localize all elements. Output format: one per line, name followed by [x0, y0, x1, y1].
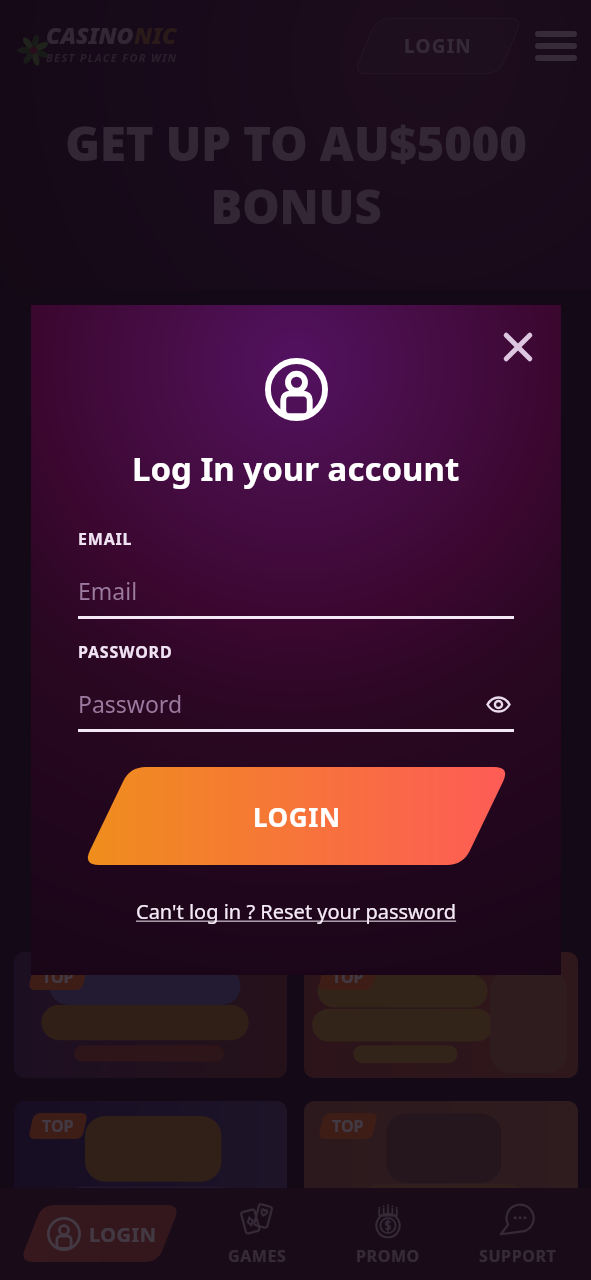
staticText: GAMES: [228, 1245, 287, 1267]
button[interactable]: TOP: [304, 952, 578, 1078]
staticText: PASSWORD: [78, 641, 173, 663]
button[interactable]: Can't log in ? Reset your password: [136, 898, 457, 925]
staticText: Email: [78, 575, 138, 603]
button[interactable]: Close: [492, 321, 544, 373]
button[interactable]: Menu: [535, 25, 577, 67]
button[interactable]: PROMO: [332, 1198, 444, 1278]
staticText: TOP: [332, 1115, 364, 1137]
staticText: TOP: [332, 966, 364, 988]
staticText: BEST PLACE FOR WIN: [46, 50, 178, 65]
button[interactable]: Casinonic home: [18, 19, 48, 65]
staticText: LOGIN: [404, 33, 472, 59]
button[interactable]: TOP: [304, 1101, 578, 1227]
staticText: Password: [78, 688, 183, 716]
button[interactable]: TOP: [14, 1101, 287, 1227]
button[interactable]: LOGIN: [83, 767, 510, 865]
button[interactable]: TOP: [14, 952, 287, 1078]
staticText: TOP: [42, 1115, 74, 1137]
staticText: SUPPORT: [479, 1245, 557, 1267]
staticText: PROMO: [356, 1245, 420, 1267]
button[interactable]: GAMES: [201, 1198, 313, 1278]
button[interactable]: LOGIN: [353, 18, 523, 74]
button[interactable]: Show password: [482, 690, 514, 718]
button[interactable]: SUPPORT: [462, 1198, 574, 1278]
staticText: CASINO: [46, 19, 134, 50]
staticText: GET UP TO AU$5000 BONUS: [65, 111, 527, 237]
staticText: EMAIL: [78, 528, 133, 550]
staticText: LOGIN: [253, 799, 341, 834]
staticText: TOP: [42, 966, 74, 988]
button[interactable]: LOGIN: [20, 1205, 180, 1262]
staticText: NIC: [134, 19, 177, 50]
staticText: LOGIN: [89, 1221, 157, 1248]
staticText: Log In your account: [132, 446, 460, 491]
button[interactable]: CASINO: [46, 19, 178, 65]
